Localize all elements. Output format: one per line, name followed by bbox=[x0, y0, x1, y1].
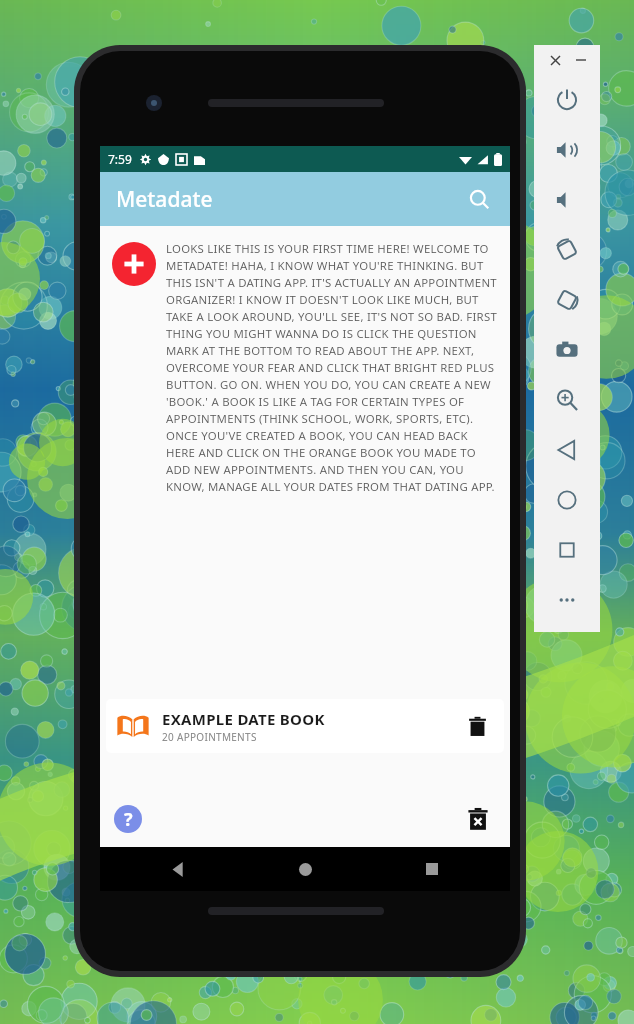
button[interactable]: Help bbox=[114, 805, 142, 833]
staticText: LOOKS LIKE THIS IS YOUR FIRST TIME HERE!… bbox=[166, 241, 500, 495]
button[interactable]: Volume up bbox=[534, 125, 600, 175]
button[interactable]: Recents bbox=[412, 849, 452, 889]
button[interactable]: Search bbox=[458, 178, 500, 220]
staticText: Metadate bbox=[116, 185, 213, 214]
staticText: EXAMPLE DATE BOOK bbox=[162, 709, 325, 729]
button[interactable]: Back bbox=[534, 425, 600, 475]
button[interactable]: Close bbox=[546, 51, 564, 69]
button[interactable]: Add book bbox=[112, 242, 156, 286]
button[interactable]: Back bbox=[158, 849, 198, 889]
button[interactable]: Home bbox=[534, 475, 600, 525]
button[interactable]: Home bbox=[285, 849, 325, 889]
button[interactable]: Volume down bbox=[534, 175, 600, 225]
button[interactable]: More bbox=[534, 575, 600, 625]
button[interactable]: Recents bbox=[534, 525, 600, 575]
button[interactable]: Minimize bbox=[572, 51, 590, 69]
button[interactable]: Rotate right bbox=[534, 275, 600, 325]
button[interactable]: Screenshot bbox=[534, 325, 600, 375]
button[interactable]: Power bbox=[534, 75, 600, 125]
button[interactable]: EXAMPLE DATE BOOK bbox=[106, 699, 504, 753]
staticText: 20 APPOINTMENTS bbox=[162, 730, 257, 744]
button[interactable]: Zoom bbox=[534, 375, 600, 425]
staticText: 7:59 bbox=[108, 151, 132, 167]
button[interactable]: Delete book bbox=[460, 709, 494, 743]
button[interactable]: Delete all bbox=[460, 801, 496, 837]
button[interactable]: Rotate left bbox=[534, 225, 600, 275]
staticText: ? bbox=[124, 807, 133, 832]
